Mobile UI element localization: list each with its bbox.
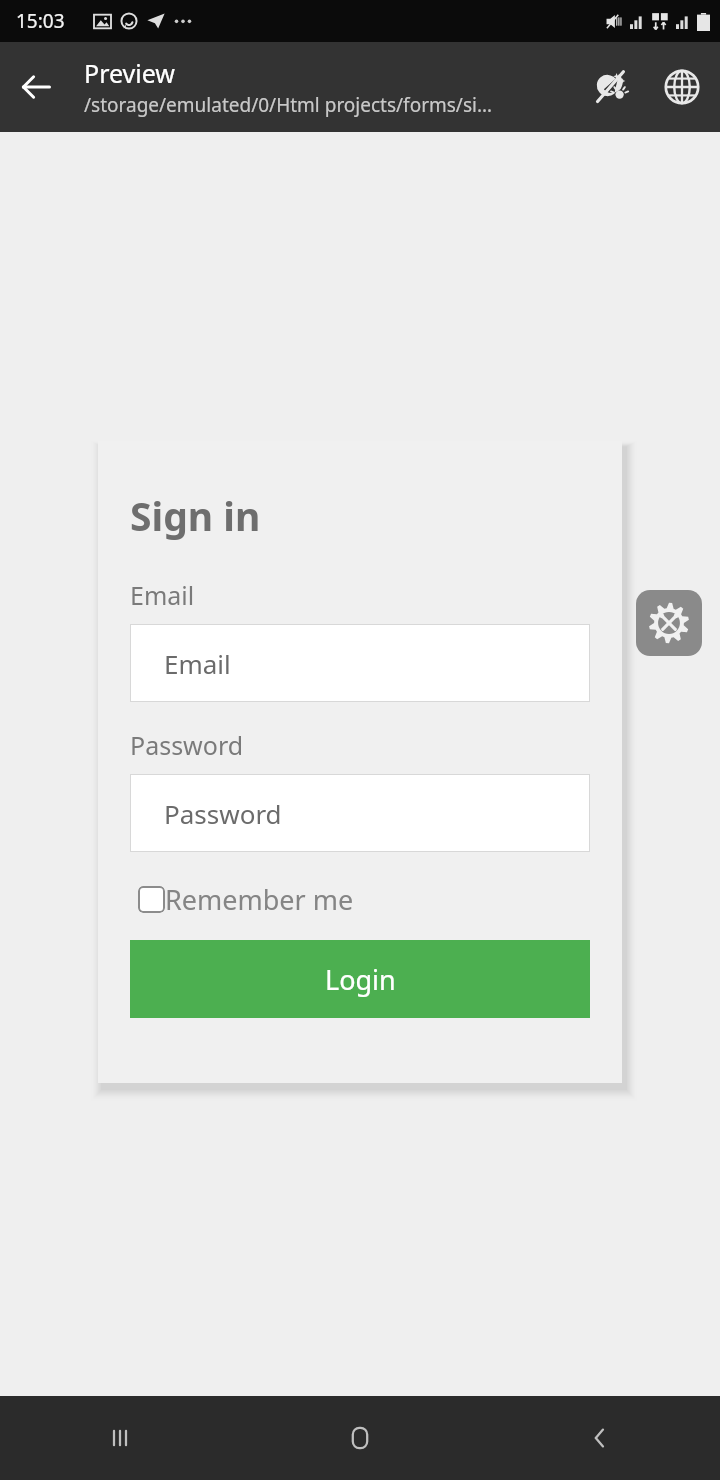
- staticText: 15:03: [16, 8, 65, 34]
- staticText: Login: [325, 961, 396, 998]
- button[interactable]: Recents: [0, 1396, 240, 1480]
- button[interactable]: Password: [130, 774, 590, 852]
- button[interactable]: Home: [240, 1396, 480, 1480]
- staticText: Password: [130, 728, 244, 762]
- button[interactable]: Toggle night mode: [576, 51, 648, 123]
- button[interactable]: Open in browser: [648, 51, 716, 123]
- staticText: Email: [164, 646, 231, 681]
- staticText: Password: [164, 796, 282, 831]
- staticText: Sign in: [130, 489, 261, 542]
- button[interactable]: Email: [130, 624, 590, 702]
- button[interactable]: Back: [480, 1396, 720, 1480]
- button[interactable]: Login: [130, 940, 590, 1018]
- staticText: Remember me: [165, 881, 354, 918]
- staticText: Email: [130, 578, 195, 612]
- staticText: Preview: [84, 56, 175, 90]
- staticText: /storage/emulated/0/Html projects/forms/…: [84, 92, 492, 118]
- button[interactable]: Settings: [636, 590, 702, 656]
- button[interactable]: Back: [0, 51, 72, 123]
- button[interactable]: Remember me: [130, 878, 354, 920]
